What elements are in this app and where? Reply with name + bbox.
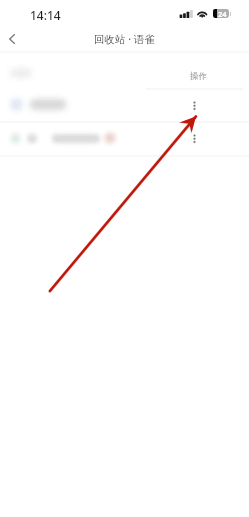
staticText: 14:14 [30, 7, 61, 23]
button[interactable]: Back [0, 27, 24, 51]
staticText: 24 [218, 9, 227, 18]
staticText: 回收站 · 语雀 [94, 32, 155, 46]
button[interactable]: More options [186, 99, 203, 112]
button[interactable]: More options [186, 132, 203, 145]
staticText: 操作 [190, 71, 207, 82]
